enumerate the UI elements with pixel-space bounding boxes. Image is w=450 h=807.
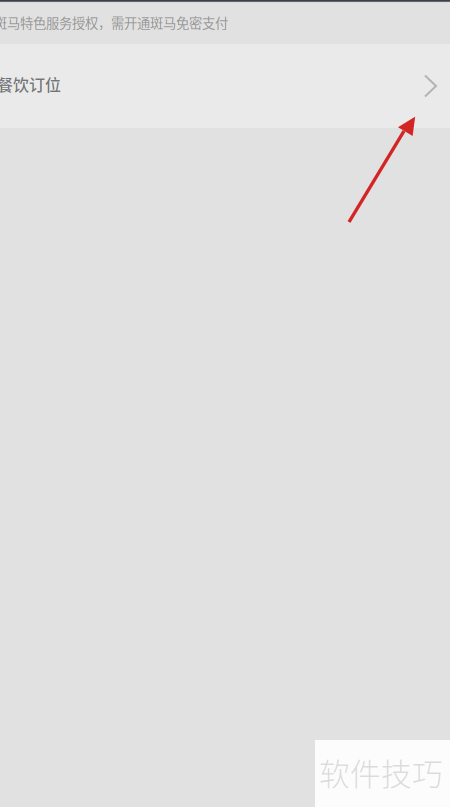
button[interactable]: 餐饮订位 xyxy=(0,44,450,128)
staticText: 软件技巧 xyxy=(319,750,443,794)
staticText: 斑马特色服务授权，需开通斑马免密支付 xyxy=(0,13,228,32)
staticText: 餐饮订位 xyxy=(0,72,61,96)
